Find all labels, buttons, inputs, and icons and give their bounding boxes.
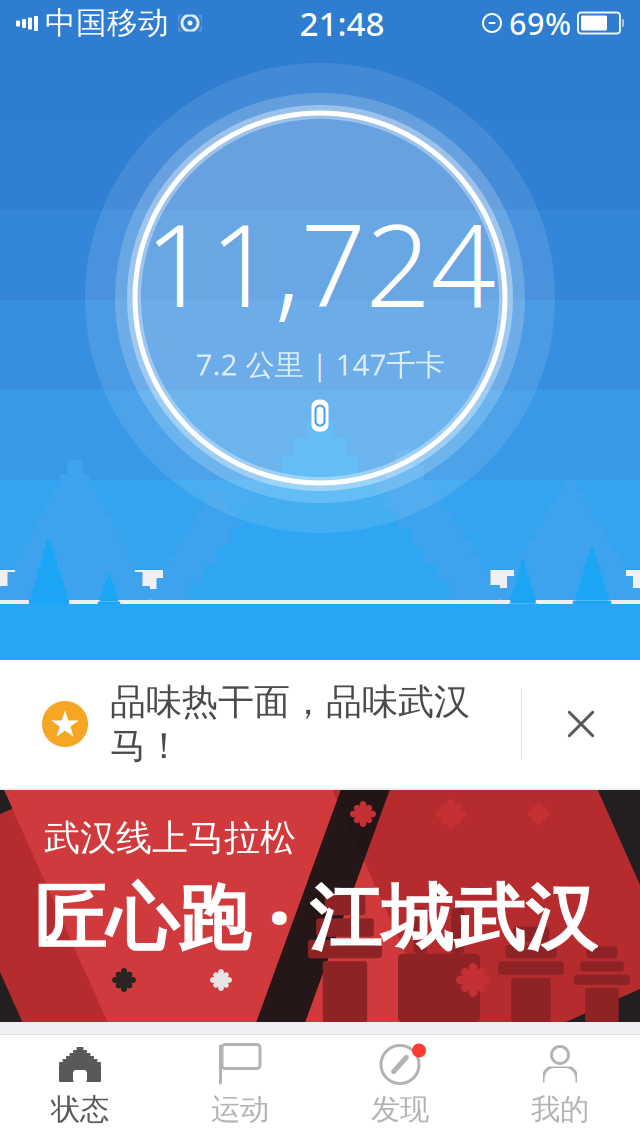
staticText: 发现 <box>371 1091 429 1127</box>
button[interactable]: 关闭 <box>522 660 640 788</box>
staticText: 状态 <box>51 1091 109 1127</box>
staticText: 运动 <box>211 1091 269 1127</box>
button[interactable]: 武汉线上马拉松 <box>0 790 640 1022</box>
button[interactable]: 状态 <box>0 1035 160 1135</box>
staticText: 中国移动 <box>45 4 169 42</box>
button[interactable]: 发现 <box>320 1035 480 1135</box>
button[interactable]: ★ <box>0 660 521 788</box>
staticText: 武汉线上马拉松 <box>44 816 296 860</box>
button[interactable]: 运动 <box>160 1035 320 1135</box>
button[interactable]: 我的 <box>480 1035 640 1135</box>
staticText: 7.2 公里 | 147千卡 <box>195 345 444 384</box>
staticText: 我的 <box>531 1091 589 1127</box>
staticText: 11,724 <box>144 186 495 339</box>
staticText: 匠心跑 · 江城武汉 <box>34 868 597 964</box>
staticText: 21:48 <box>299 1 384 45</box>
staticText: 69% <box>509 3 571 43</box>
staticText: 品味热干面，品味武汉马！ <box>110 680 470 768</box>
staticText: ★ <box>49 704 81 744</box>
